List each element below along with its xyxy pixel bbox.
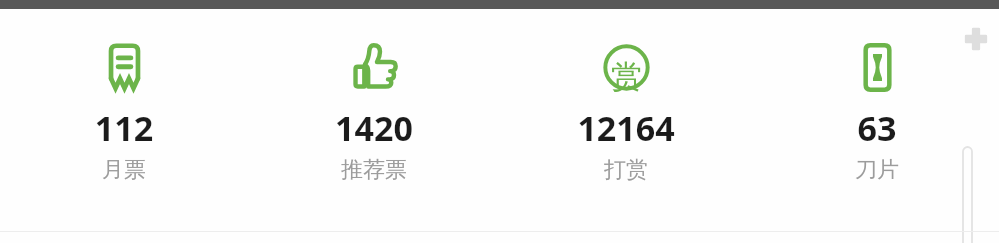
button[interactable]: Add [958, 21, 994, 57]
button[interactable]: 112 [39, 40, 209, 202]
staticText: 赏 [611, 57, 642, 96]
staticText: 推荐票 [289, 156, 459, 184]
staticText: 月票 [39, 156, 209, 184]
staticText: 112 [39, 105, 209, 151]
staticText: 12164 [541, 105, 711, 151]
staticText: 打赏 [541, 156, 711, 184]
staticText: 63 [792, 105, 962, 151]
staticText: 1420 [289, 105, 459, 151]
button[interactable]: 12164 [541, 40, 711, 202]
button[interactable]: 63 [792, 40, 962, 202]
staticText: 刀片 [792, 156, 962, 184]
button[interactable]: 1420 [289, 40, 459, 202]
